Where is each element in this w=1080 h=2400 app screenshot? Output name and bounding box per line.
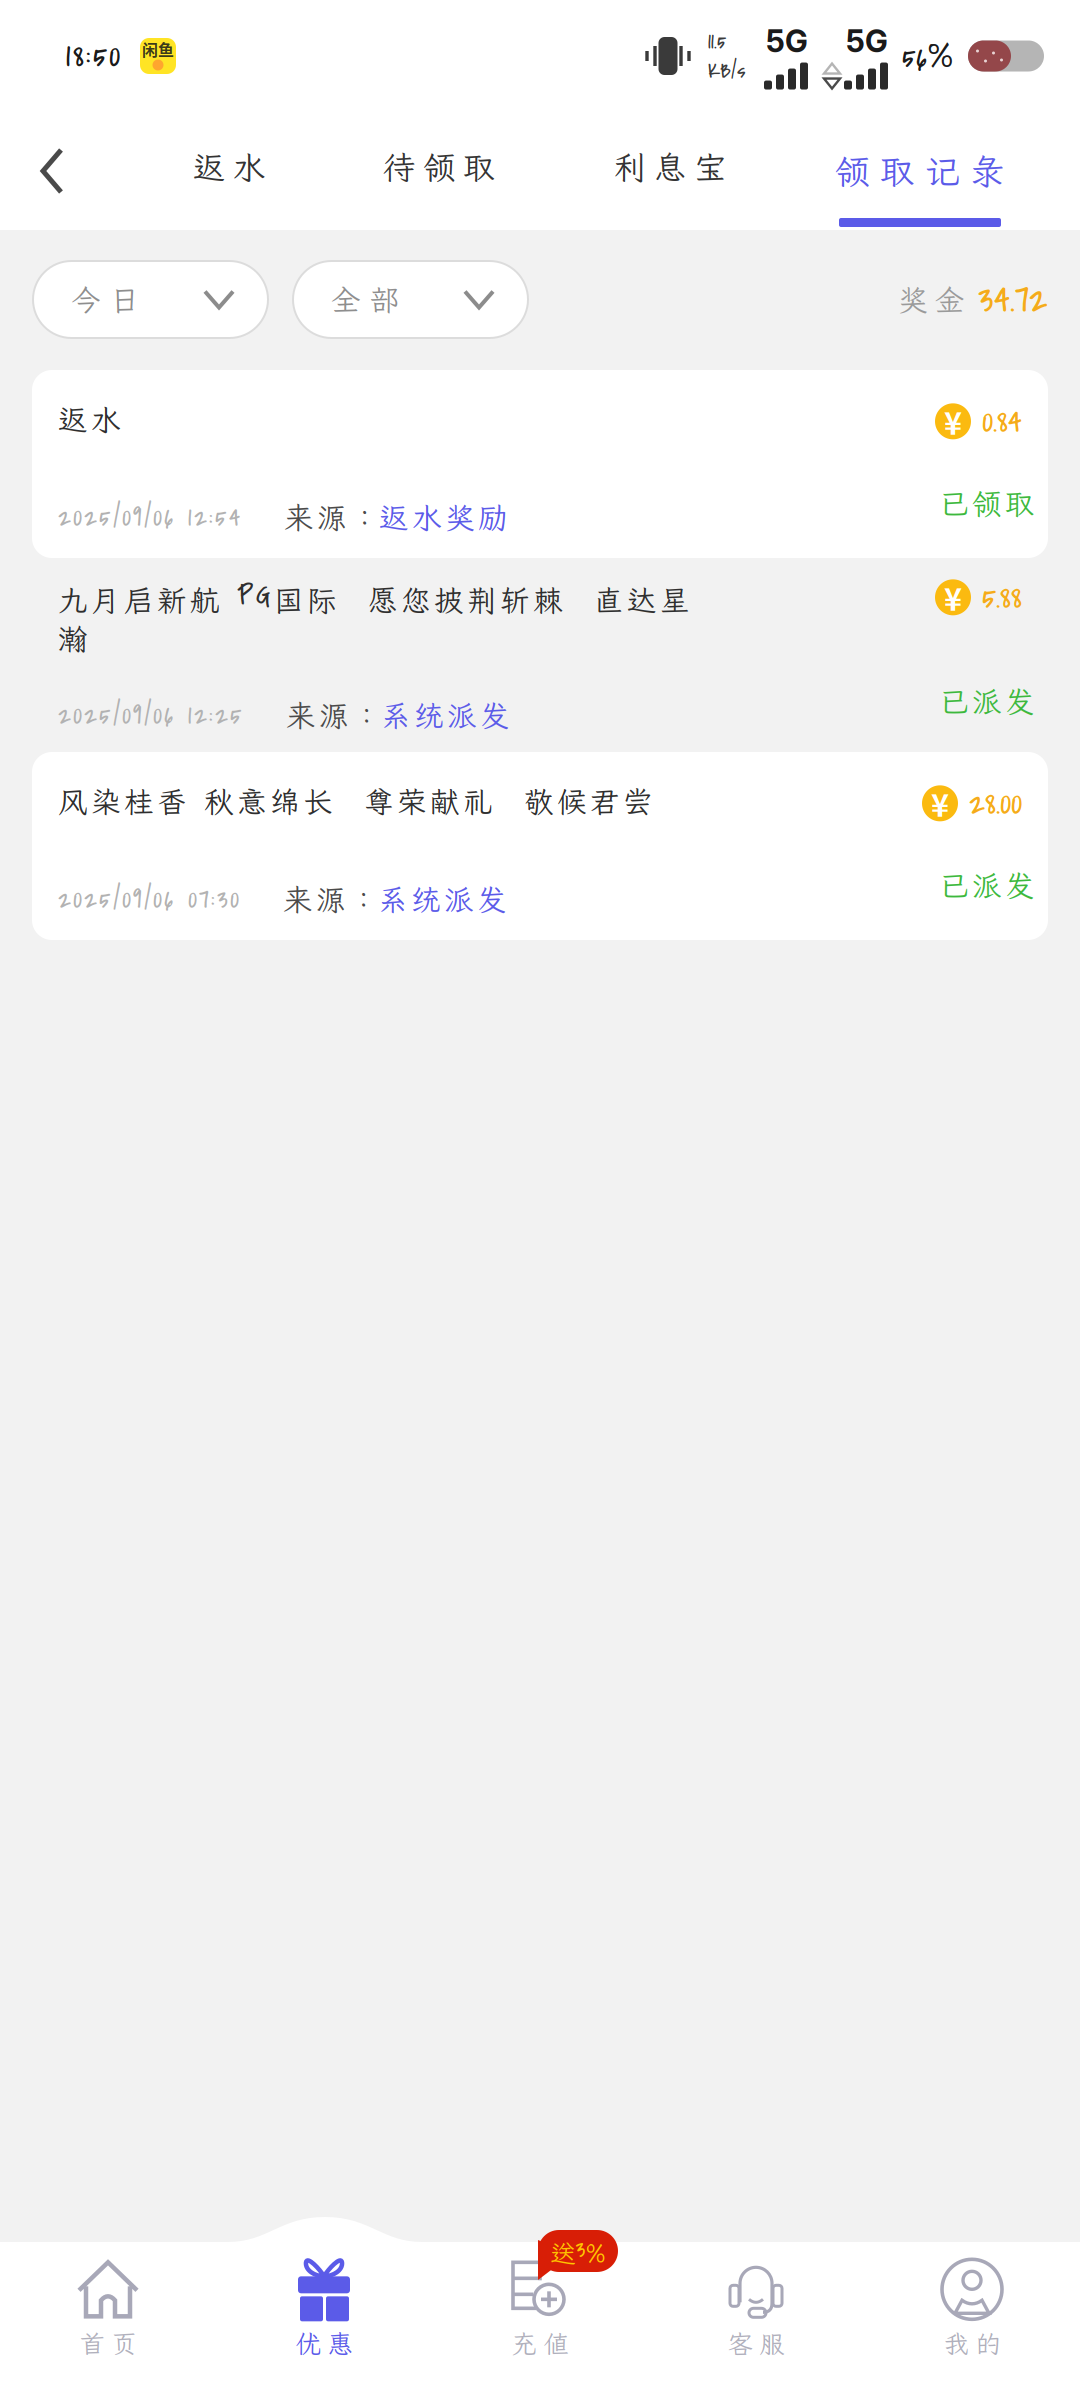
staticText: ¥ [944, 575, 962, 619]
button[interactable]: 优惠 [216, 2234, 432, 2384]
button[interactable]: 全部 [293, 261, 528, 338]
button[interactable]: 待领取 [344, 112, 534, 222]
staticText: 来源： [286, 696, 381, 735]
staticText: 28.00 [969, 780, 1022, 827]
button[interactable]: Back [0, 112, 104, 230]
staticText: 18:50 [66, 33, 120, 79]
staticText: 系统派发 [381, 696, 509, 735]
button[interactable]: 客服 [648, 2234, 864, 2384]
staticText: 闲鱼 [142, 37, 174, 61]
staticText: 来源： [283, 880, 378, 919]
button[interactable]: 风染桂香 秋意绵长 尊荣献礼 敬候君尝 [32, 752, 1048, 940]
staticText: 11.5 [708, 26, 726, 57]
staticText: 九月启新航 PG国际 愿您披荆斩棘 直达星瀚 [58, 576, 689, 658]
staticText: 返水奖励 [379, 498, 507, 537]
staticText: 充值 [511, 2327, 568, 2360]
staticText: 客服 [727, 2327, 784, 2360]
button[interactable]: 我的 [864, 2234, 1080, 2384]
button[interactable]: 领取记录 [810, 112, 1030, 230]
button[interactable]: 利息宝 [575, 112, 765, 222]
staticText: 我的 [943, 2327, 1000, 2360]
staticText: 已派发 [939, 682, 1034, 721]
staticText: 优惠 [295, 2327, 352, 2360]
staticText: 首页 [79, 2327, 136, 2360]
staticText: ¥ [931, 781, 949, 825]
staticText: 利息宝 [614, 146, 726, 188]
button[interactable]: 首页 [0, 2234, 216, 2384]
staticText: 今日 [71, 280, 139, 319]
staticText: 5G [766, 22, 808, 59]
staticText: 0.84 [982, 398, 1022, 445]
staticText: 奖金 [898, 280, 964, 319]
staticText: KB/s [708, 57, 746, 86]
staticText: 领取记录 [835, 148, 1005, 194]
staticText: 已派发 [939, 866, 1034, 905]
button[interactable]: 返水 [134, 112, 324, 222]
staticText: 5.88 [982, 574, 1022, 621]
staticText: 返水 [193, 146, 265, 188]
staticText: 5G [846, 22, 888, 59]
staticText: ¥ [944, 399, 962, 443]
staticText: 2025/09/06 12:54 [58, 498, 240, 536]
button[interactable]: 九月启新航 PG国际 愿您披荆斩棘 直达星瀚 [32, 558, 1048, 752]
staticText: 56% [902, 33, 954, 79]
button[interactable]: 今日 [33, 261, 268, 338]
staticText: 待领取 [383, 146, 495, 188]
staticText: 来源： [284, 498, 379, 537]
staticText: 34.72 [978, 273, 1048, 326]
staticText: 已领取 [939, 484, 1034, 523]
staticText: 2025/09/06 12:25 [58, 696, 242, 734]
button[interactable]: 返水 [32, 370, 1048, 558]
button[interactable]: 充值 [432, 2234, 648, 2384]
staticText: 全部 [331, 280, 399, 319]
staticText: 送3% [550, 2232, 605, 2270]
staticText: 返水 [58, 400, 120, 439]
staticText: 风染桂香 秋意绵长 尊荣献礼 敬候君尝 [58, 782, 652, 821]
staticText: 2025/09/06 07:30 [58, 880, 239, 918]
staticText: 系统派发 [378, 880, 506, 919]
